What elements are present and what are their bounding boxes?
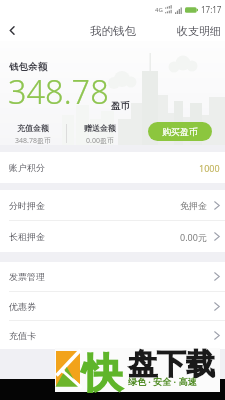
staticText: 优惠券 <box>9 301 36 312</box>
staticText: 收支明细 <box>177 24 221 38</box>
staticText: 钱包余额 <box>9 61 47 73</box>
button[interactable]: 充值卡 <box>0 321 225 349</box>
staticText: 赠送金额 <box>84 123 116 133</box>
staticText: 348.78 <box>8 69 109 113</box>
staticText: 0.00盈币 <box>86 136 114 146</box>
staticText: 充值卡 <box>9 330 36 341</box>
button[interactable]: 账户积分 <box>0 152 225 183</box>
staticText: 购买盈币 <box>162 126 198 137</box>
staticText: 长租押金 <box>9 231 45 242</box>
staticText: 分时押金 <box>9 200 45 211</box>
staticText: 绿色 · 安全 · 高速 <box>128 375 197 387</box>
staticText: 我的钱包 <box>90 24 136 38</box>
staticText: 免押金 <box>180 200 207 211</box>
staticText: 盘下载 <box>128 346 215 383</box>
staticText: 发票管理 <box>9 271 45 282</box>
staticText: 348.78盈币 <box>15 136 51 146</box>
button[interactable]: 长租押金 <box>0 221 225 252</box>
staticText: 1000 <box>199 162 220 174</box>
button[interactable]: Back <box>0 20 24 41</box>
staticText: 充值金额 <box>17 123 49 133</box>
staticText: 快 <box>82 348 122 398</box>
staticText: 0.00元 <box>180 231 207 243</box>
button[interactable]: 优惠券 <box>0 292 225 320</box>
button[interactable]: 收支明细 <box>0 20 225 41</box>
staticText: 盈币 <box>111 100 130 112</box>
button[interactable]: 分时押金 <box>0 190 225 220</box>
button[interactable]: 购买盈币 <box>148 122 212 141</box>
button[interactable]: 发票管理 <box>0 262 225 291</box>
staticText: 账户积分 <box>9 162 45 173</box>
staticText: 4G <box>155 6 163 14</box>
staticText: 17:17 <box>201 4 222 15</box>
